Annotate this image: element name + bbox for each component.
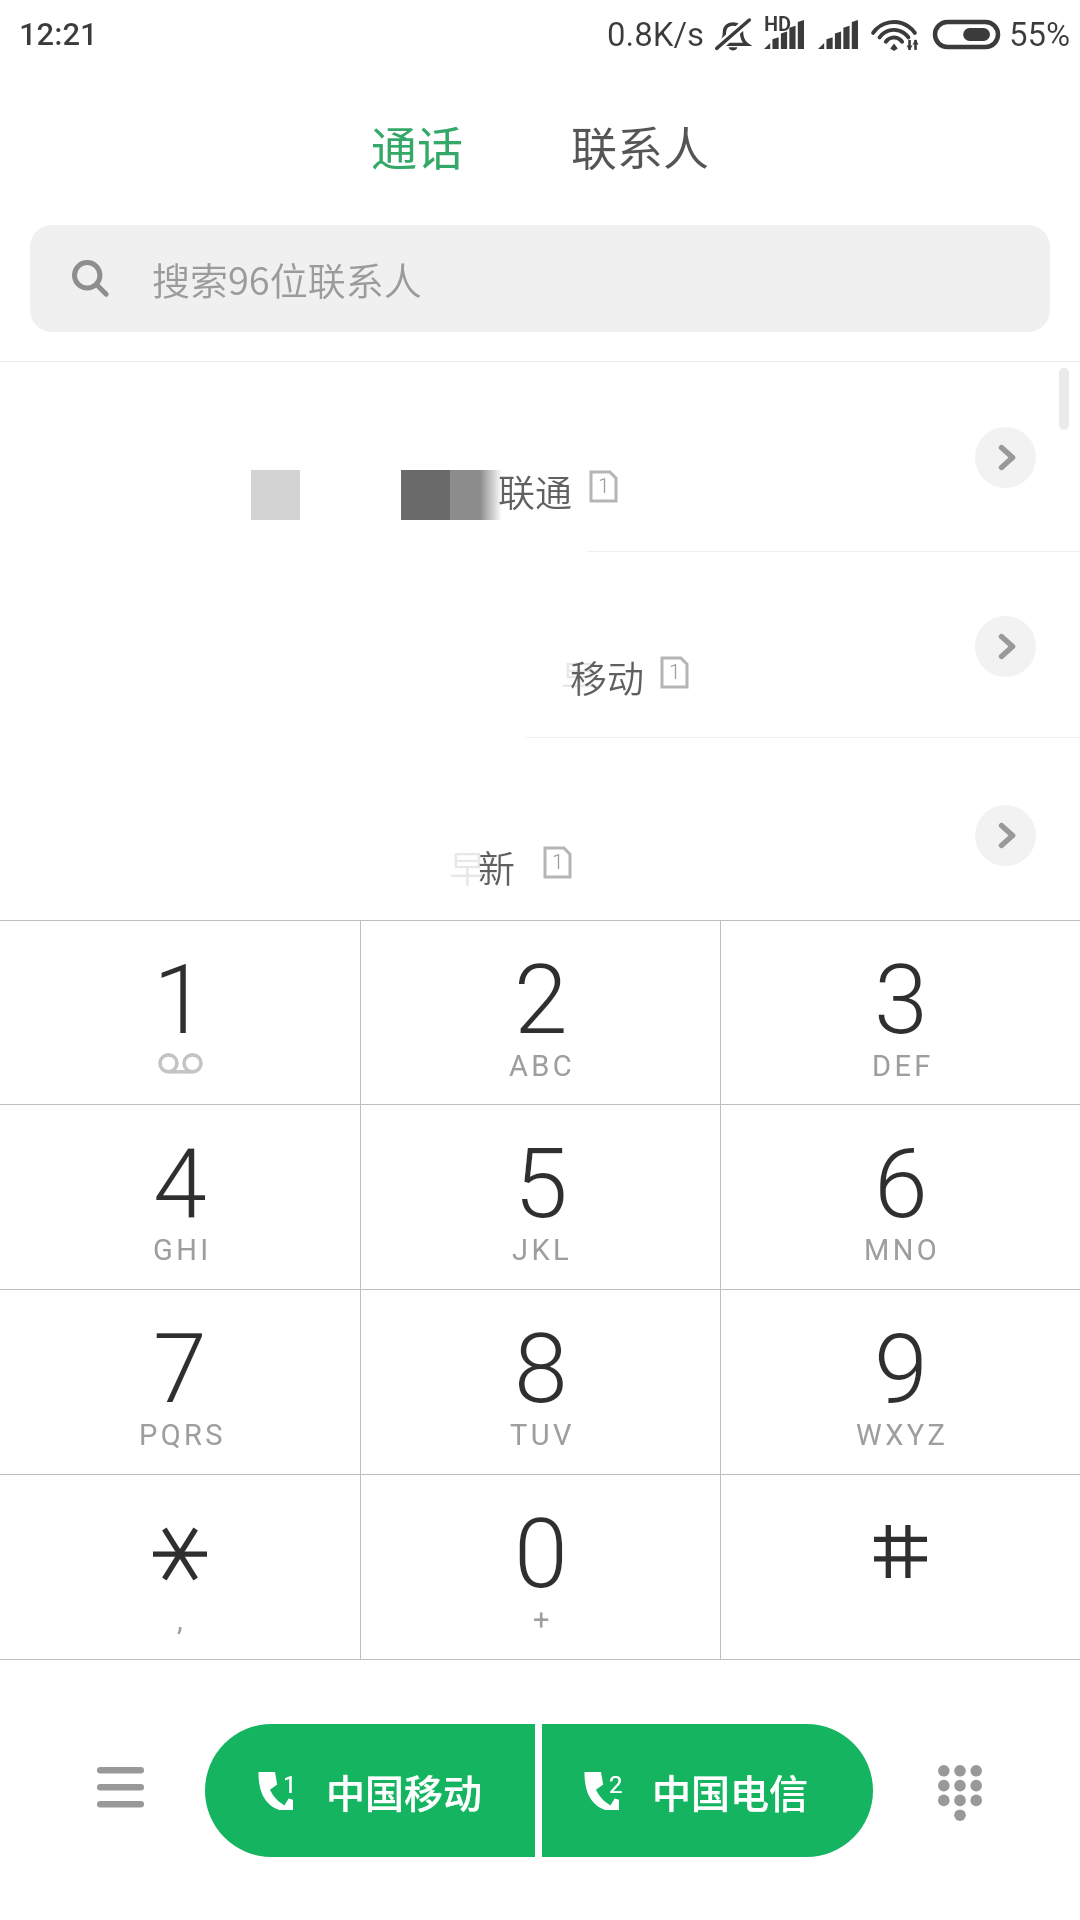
- button[interactable]: 6: [721, 1105, 1080, 1289]
- staticText: HD: [764, 12, 792, 35]
- button[interactable]: star: [0, 1475, 360, 1659]
- staticText: 新: [478, 840, 515, 894]
- button[interactable]: 8: [361, 1290, 720, 1474]
- button[interactable]: Call details: [975, 616, 1036, 677]
- button[interactable]: pound: [721, 1475, 1080, 1659]
- button[interactable]: 4: [0, 1105, 360, 1289]
- staticText: 联系人: [571, 112, 709, 179]
- staticText: TUV: [510, 1418, 575, 1452]
- staticText: 0: [514, 1497, 568, 1611]
- staticText: 通话: [371, 112, 463, 179]
- button[interactable]: 联通: [0, 362, 1080, 552]
- staticText: 3: [874, 943, 928, 1057]
- button[interactable]: 3: [721, 921, 1080, 1104]
- staticText: 5: [514, 1127, 568, 1241]
- button[interactable]: 通话: [345, 100, 489, 191]
- staticText: 搜索96位联系人: [152, 251, 422, 306]
- staticText: GHI: [153, 1233, 212, 1267]
- staticText: 1: [598, 474, 610, 499]
- staticText: 2: [609, 1771, 623, 1799]
- button[interactable]: 搜索96位联系人: [30, 225, 1050, 332]
- staticText: ABC: [509, 1049, 576, 1083]
- staticText: ,: [177, 1603, 187, 1637]
- button[interactable]: 1: [0, 921, 360, 1104]
- button[interactable]: 0: [361, 1475, 720, 1659]
- button[interactable]: 9: [721, 1290, 1080, 1474]
- button[interactable]: Dialpad: [900, 1710, 1030, 1870]
- staticText: 移动: [570, 650, 644, 704]
- button[interactable]: 2: [361, 921, 720, 1104]
- staticText: 55%: [1009, 15, 1071, 54]
- staticText: 中国移动: [326, 1763, 483, 1819]
- staticText: 7: [153, 1312, 207, 1426]
- button[interactable]: 联系人: [545, 100, 735, 191]
- staticText: 12:21: [19, 16, 98, 52]
- staticText: 1: [283, 1771, 297, 1799]
- staticText: 4: [153, 1127, 207, 1241]
- button[interactable]: Call details: [975, 805, 1036, 866]
- staticText: 中国电信: [652, 1763, 809, 1819]
- button[interactable]: 早: [0, 738, 1080, 928]
- staticText: 1: [552, 850, 564, 875]
- staticText: DEF: [872, 1049, 934, 1083]
- staticText: PQRS: [139, 1418, 226, 1452]
- staticText: 8: [514, 1312, 568, 1426]
- button[interactable]: Call details: [975, 427, 1036, 488]
- staticText: 1: [669, 660, 681, 685]
- staticText: JKL: [512, 1233, 573, 1267]
- button[interactable]: Call log menu: [55, 1710, 185, 1870]
- staticText: WXYZ: [856, 1418, 949, 1452]
- button[interactable]: 2: [542, 1724, 849, 1857]
- button[interactable]: 早: [0, 548, 1080, 738]
- staticText: 0.8K/s: [607, 15, 705, 54]
- button[interactable]: 1: [205, 1724, 535, 1857]
- staticText: 2: [514, 943, 568, 1057]
- staticText: 6: [874, 1127, 928, 1241]
- staticText: MNO: [864, 1233, 941, 1267]
- staticText: 联通: [498, 464, 572, 518]
- button[interactable]: 5: [361, 1105, 720, 1289]
- staticText: 早: [561, 650, 598, 704]
- staticText: +: [533, 1603, 553, 1637]
- staticText: 1: [153, 943, 207, 1057]
- staticText: 9: [874, 1312, 928, 1426]
- staticText: 早: [449, 840, 486, 894]
- button[interactable]: 7: [0, 1290, 360, 1474]
